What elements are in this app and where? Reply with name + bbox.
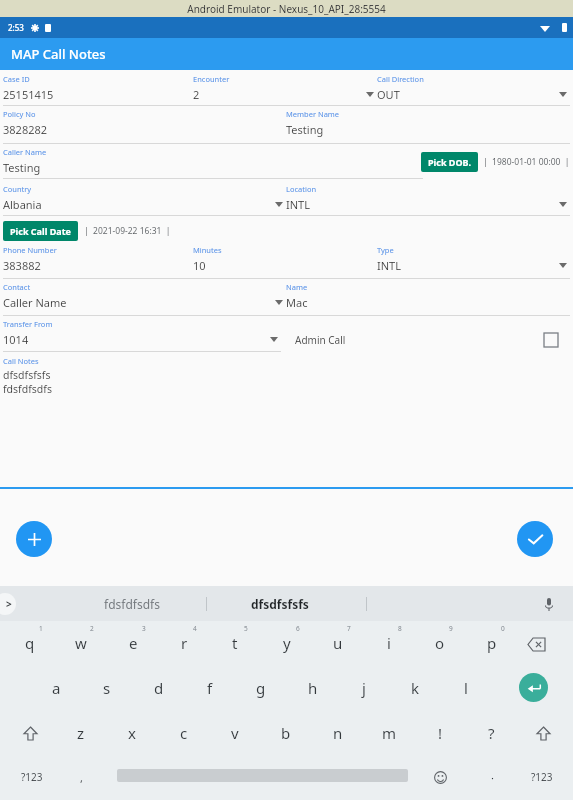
- button[interactable]: Location: [286, 184, 570, 216]
- button[interactable]: Call Notes: [3, 356, 573, 396]
- staticText: y: [283, 633, 291, 653]
- staticText: Testing: [286, 122, 324, 137]
- button[interactable]: Caller Name: [3, 147, 423, 179]
- button[interactable]: Contact: [3, 282, 286, 313]
- button[interactable]: Backspace: [520, 631, 552, 657]
- button[interactable]: l: [443, 665, 489, 710]
- staticText: Caller Name: [3, 295, 67, 310]
- button[interactable]: dfsdfsfsfs: [251, 596, 309, 612]
- button[interactable]: i: [366, 621, 412, 665]
- staticText: k: [411, 678, 420, 698]
- staticText: Country: [3, 184, 32, 194]
- button[interactable]: Voice input: [539, 594, 559, 614]
- staticText: Minutes: [193, 245, 222, 255]
- staticText: Android Emulator - Nexus_10_API_28:5554: [187, 2, 386, 16]
- button[interactable]: Case ID: [3, 74, 193, 106]
- staticText: ?123: [531, 770, 553, 784]
- button[interactable]: Pick DOB.: [421, 152, 478, 172]
- button[interactable]: Transfer From: [3, 319, 281, 352]
- staticText: s: [103, 678, 111, 698]
- button[interactable]: v: [212, 710, 258, 755]
- button[interactable]: Enter: [519, 673, 548, 702]
- button[interactable]: Name: [286, 282, 570, 313]
- button[interactable]: c: [161, 710, 207, 755]
- staticText: INTL: [286, 197, 310, 212]
- staticText: Phone Number: [3, 245, 57, 255]
- button[interactable]: Save: [517, 521, 553, 557]
- button[interactable]: y: [264, 621, 310, 665]
- staticText: OUT: [377, 87, 400, 102]
- button[interactable]: Shift: [525, 721, 561, 745]
- button[interactable]: Expand suggestions: [0, 593, 16, 615]
- button[interactable]: t: [212, 621, 258, 665]
- button[interactable]: o: [417, 621, 463, 665]
- button[interactable]: Emoji: [425, 763, 455, 791]
- button[interactable]: fdsfdfsdfs: [104, 596, 160, 612]
- staticText: 7: [347, 624, 351, 633]
- button[interactable]: e: [110, 621, 156, 665]
- button[interactable]: x: [109, 710, 155, 755]
- button[interactable]: ?: [468, 710, 514, 755]
- button[interactable]: k: [392, 665, 438, 710]
- staticText: q: [25, 633, 35, 653]
- staticText: n: [333, 723, 343, 743]
- button[interactable]: n: [315, 710, 361, 755]
- staticText: Pick Call Date: [10, 225, 71, 237]
- button[interactable]: r: [161, 621, 207, 665]
- button[interactable]: Pick Call Date: [3, 221, 78, 241]
- button[interactable]: Country: [3, 184, 286, 216]
- staticText: 10: [193, 258, 206, 273]
- button[interactable]: ·: [477, 763, 507, 791]
- button[interactable]: f: [187, 665, 233, 710]
- staticText: Testing: [3, 160, 41, 175]
- button[interactable]: Member Name: [286, 109, 570, 140]
- button[interactable]: ,: [66, 763, 96, 791]
- staticText: a: [52, 678, 61, 698]
- button[interactable]: p: [469, 621, 515, 665]
- button[interactable]: Encounter: [193, 74, 377, 106]
- button[interactable]: Call Direction: [377, 74, 570, 106]
- staticText: Name: [286, 282, 308, 292]
- staticText: c: [180, 723, 188, 743]
- staticText: 2: [90, 624, 94, 633]
- staticText: fdsfdfsdfs: [104, 596, 160, 612]
- button[interactable]: m: [366, 710, 412, 755]
- button[interactable]: w: [58, 621, 104, 665]
- staticText: 4: [193, 624, 197, 633]
- staticText: Location: [286, 184, 317, 194]
- button[interactable]: ?123: [8, 763, 56, 791]
- staticText: 0: [501, 624, 505, 633]
- staticText: m: [382, 723, 397, 743]
- staticText: d: [154, 678, 164, 698]
- button[interactable]: Policy No: [3, 109, 286, 140]
- button[interactable]: g: [238, 665, 284, 710]
- button[interactable]: !: [417, 710, 463, 755]
- button[interactable]: Shift: [12, 721, 48, 745]
- button[interactable]: d: [136, 665, 182, 710]
- button[interactable]: u: [315, 621, 361, 665]
- staticText: z: [77, 723, 85, 743]
- staticText: Call Notes: [3, 356, 39, 366]
- button[interactable]: Phone Number: [3, 245, 193, 276]
- button[interactable]: Admin Call: [295, 333, 558, 347]
- staticText: w: [75, 633, 87, 653]
- button[interactable]: h: [290, 665, 336, 710]
- staticText: 3828282: [3, 122, 48, 137]
- button[interactable]: z: [58, 710, 104, 755]
- button[interactable]: ?123: [518, 763, 566, 791]
- button[interactable]: j: [341, 665, 387, 710]
- staticText: Transfer From: [3, 319, 53, 329]
- staticText: t: [232, 633, 238, 653]
- button[interactable]: a: [33, 665, 79, 710]
- staticText: ?123: [21, 770, 43, 784]
- staticText: j: [362, 678, 366, 698]
- button[interactable]: q: [7, 621, 53, 665]
- button[interactable]: b: [263, 710, 309, 755]
- button[interactable]: s: [84, 665, 130, 710]
- button[interactable]: Add: [16, 521, 52, 557]
- staticText: 9: [449, 624, 453, 633]
- button[interactable]: Type: [377, 245, 570, 276]
- staticText: u: [333, 633, 343, 653]
- button[interactable]: Minutes: [193, 245, 377, 276]
